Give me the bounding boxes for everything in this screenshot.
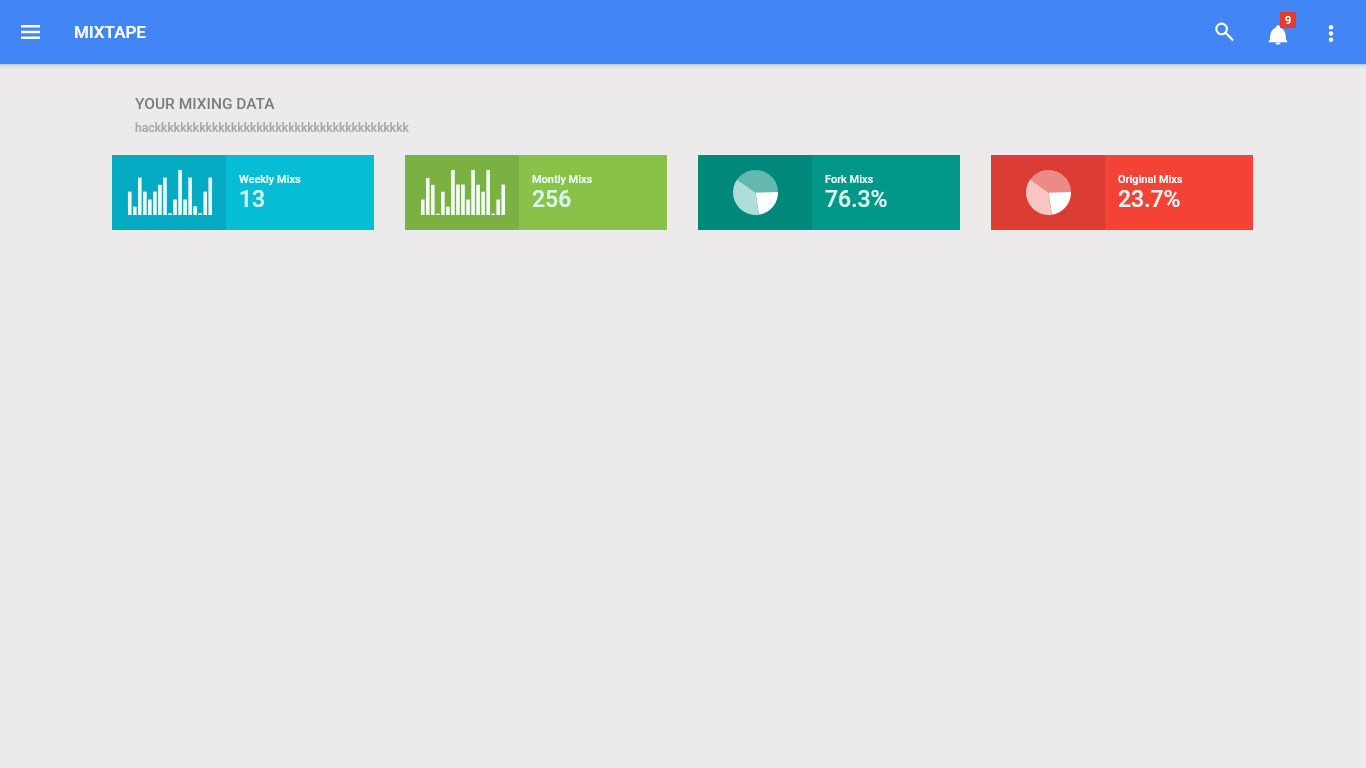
button[interactable]: Weekly Mixs xyxy=(112,155,374,230)
button[interactable]: Original Mixs xyxy=(991,155,1253,230)
staticText: hackkkkkkkkkkkkkkkkkkkkkkkkkkkkkkkkkkkkk… xyxy=(135,121,409,135)
staticText: 23.7% xyxy=(1118,186,1181,213)
button[interactable]: Notifications, 9 unread xyxy=(1259,8,1307,56)
staticText: Weekly Mixs xyxy=(239,173,301,186)
staticText: 256 xyxy=(532,186,572,213)
button[interactable]: Fork Mixs xyxy=(698,155,960,230)
button[interactable]: Open navigation menu xyxy=(8,10,52,54)
staticText: Fork Mixs xyxy=(825,173,874,186)
button[interactable]: Montly Mixs xyxy=(405,155,667,230)
staticText: 13 xyxy=(239,186,266,213)
button[interactable]: Search xyxy=(1204,8,1252,56)
staticText: Original Mixs xyxy=(1118,173,1183,186)
staticText: YOUR MIXING DATA xyxy=(135,95,275,113)
staticText: MIXTAPE xyxy=(74,22,146,42)
staticText: 76.3% xyxy=(825,186,888,213)
staticText: Montly Mixs xyxy=(532,173,593,186)
button[interactable]: More options xyxy=(1307,8,1355,56)
staticText: 9 xyxy=(1285,14,1292,27)
